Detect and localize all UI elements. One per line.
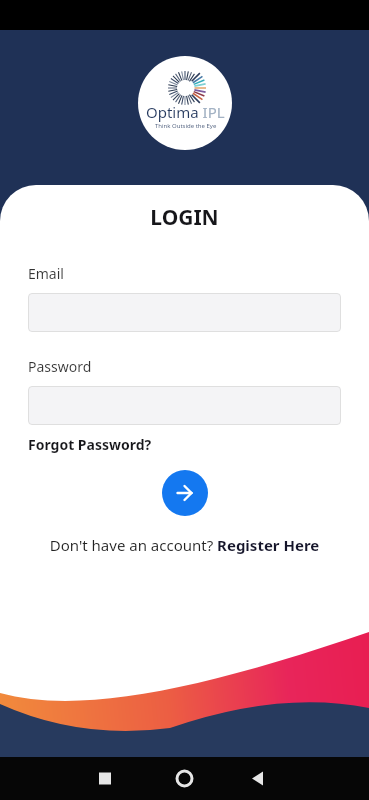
button[interactable]	[162, 470, 208, 516]
staticText: Password	[28, 357, 92, 376]
staticText: Optima IPL	[146, 102, 225, 122]
button[interactable]: Don't have an account? Register Here	[0, 535, 369, 555]
staticText: LOGIN	[0, 203, 369, 232]
button[interactable]	[28, 386, 341, 425]
button[interactable]: Forgot Password?	[28, 435, 152, 454]
button[interactable]	[28, 293, 341, 332]
staticText: Think Outside the Eye	[155, 122, 217, 130]
staticText: Email	[28, 264, 64, 283]
